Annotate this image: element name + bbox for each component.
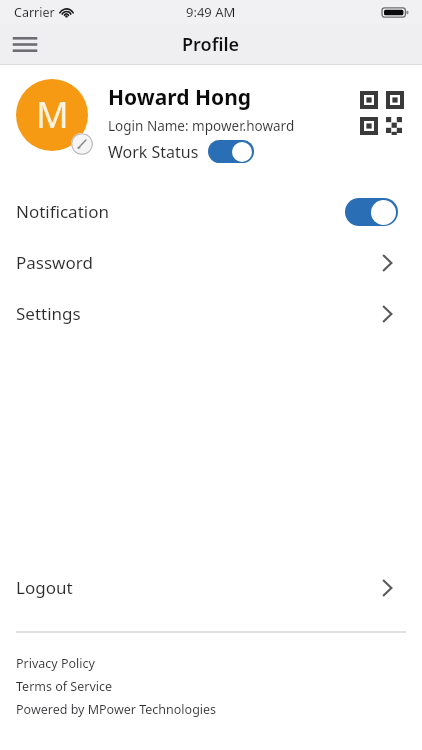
button[interactable]: Terms of Service bbox=[16, 678, 113, 695]
button[interactable]: Powered by MPower Technologies bbox=[16, 701, 217, 718]
staticText: 9:49 AM bbox=[186, 3, 236, 21]
button[interactable]: Notification bbox=[0, 186, 422, 237]
staticText: Notification bbox=[16, 200, 109, 223]
button[interactable]: Menu bbox=[6, 25, 44, 63]
button[interactable]: Password bbox=[0, 237, 422, 288]
staticText: Profile bbox=[182, 32, 240, 57]
staticText: Howard Hong bbox=[108, 83, 252, 112]
staticText: Password bbox=[16, 251, 93, 274]
staticText: Carrier bbox=[14, 4, 55, 21]
button[interactable]: Avatar bbox=[16, 79, 88, 151]
button[interactable]: Logout bbox=[0, 562, 422, 613]
staticText: Powered by MPower Technologies bbox=[16, 701, 217, 718]
button[interactable]: Privacy Policy bbox=[16, 655, 95, 672]
staticText: Login Name: mpower.howard bbox=[108, 117, 295, 135]
staticText: Settings bbox=[16, 302, 81, 325]
button[interactable]: Edit profile photo bbox=[71, 133, 93, 155]
button[interactable]: Show QR code bbox=[358, 89, 406, 137]
staticText: M bbox=[36, 90, 69, 139]
button[interactable]: Toggle on bbox=[345, 198, 398, 226]
staticText: Logout bbox=[16, 576, 73, 599]
button[interactable]: Toggle on bbox=[208, 140, 254, 163]
staticText: Work Status bbox=[108, 141, 199, 163]
staticText: Privacy Policy bbox=[16, 655, 95, 672]
button[interactable]: Settings bbox=[0, 288, 422, 339]
staticText: Terms of Service bbox=[16, 678, 113, 695]
